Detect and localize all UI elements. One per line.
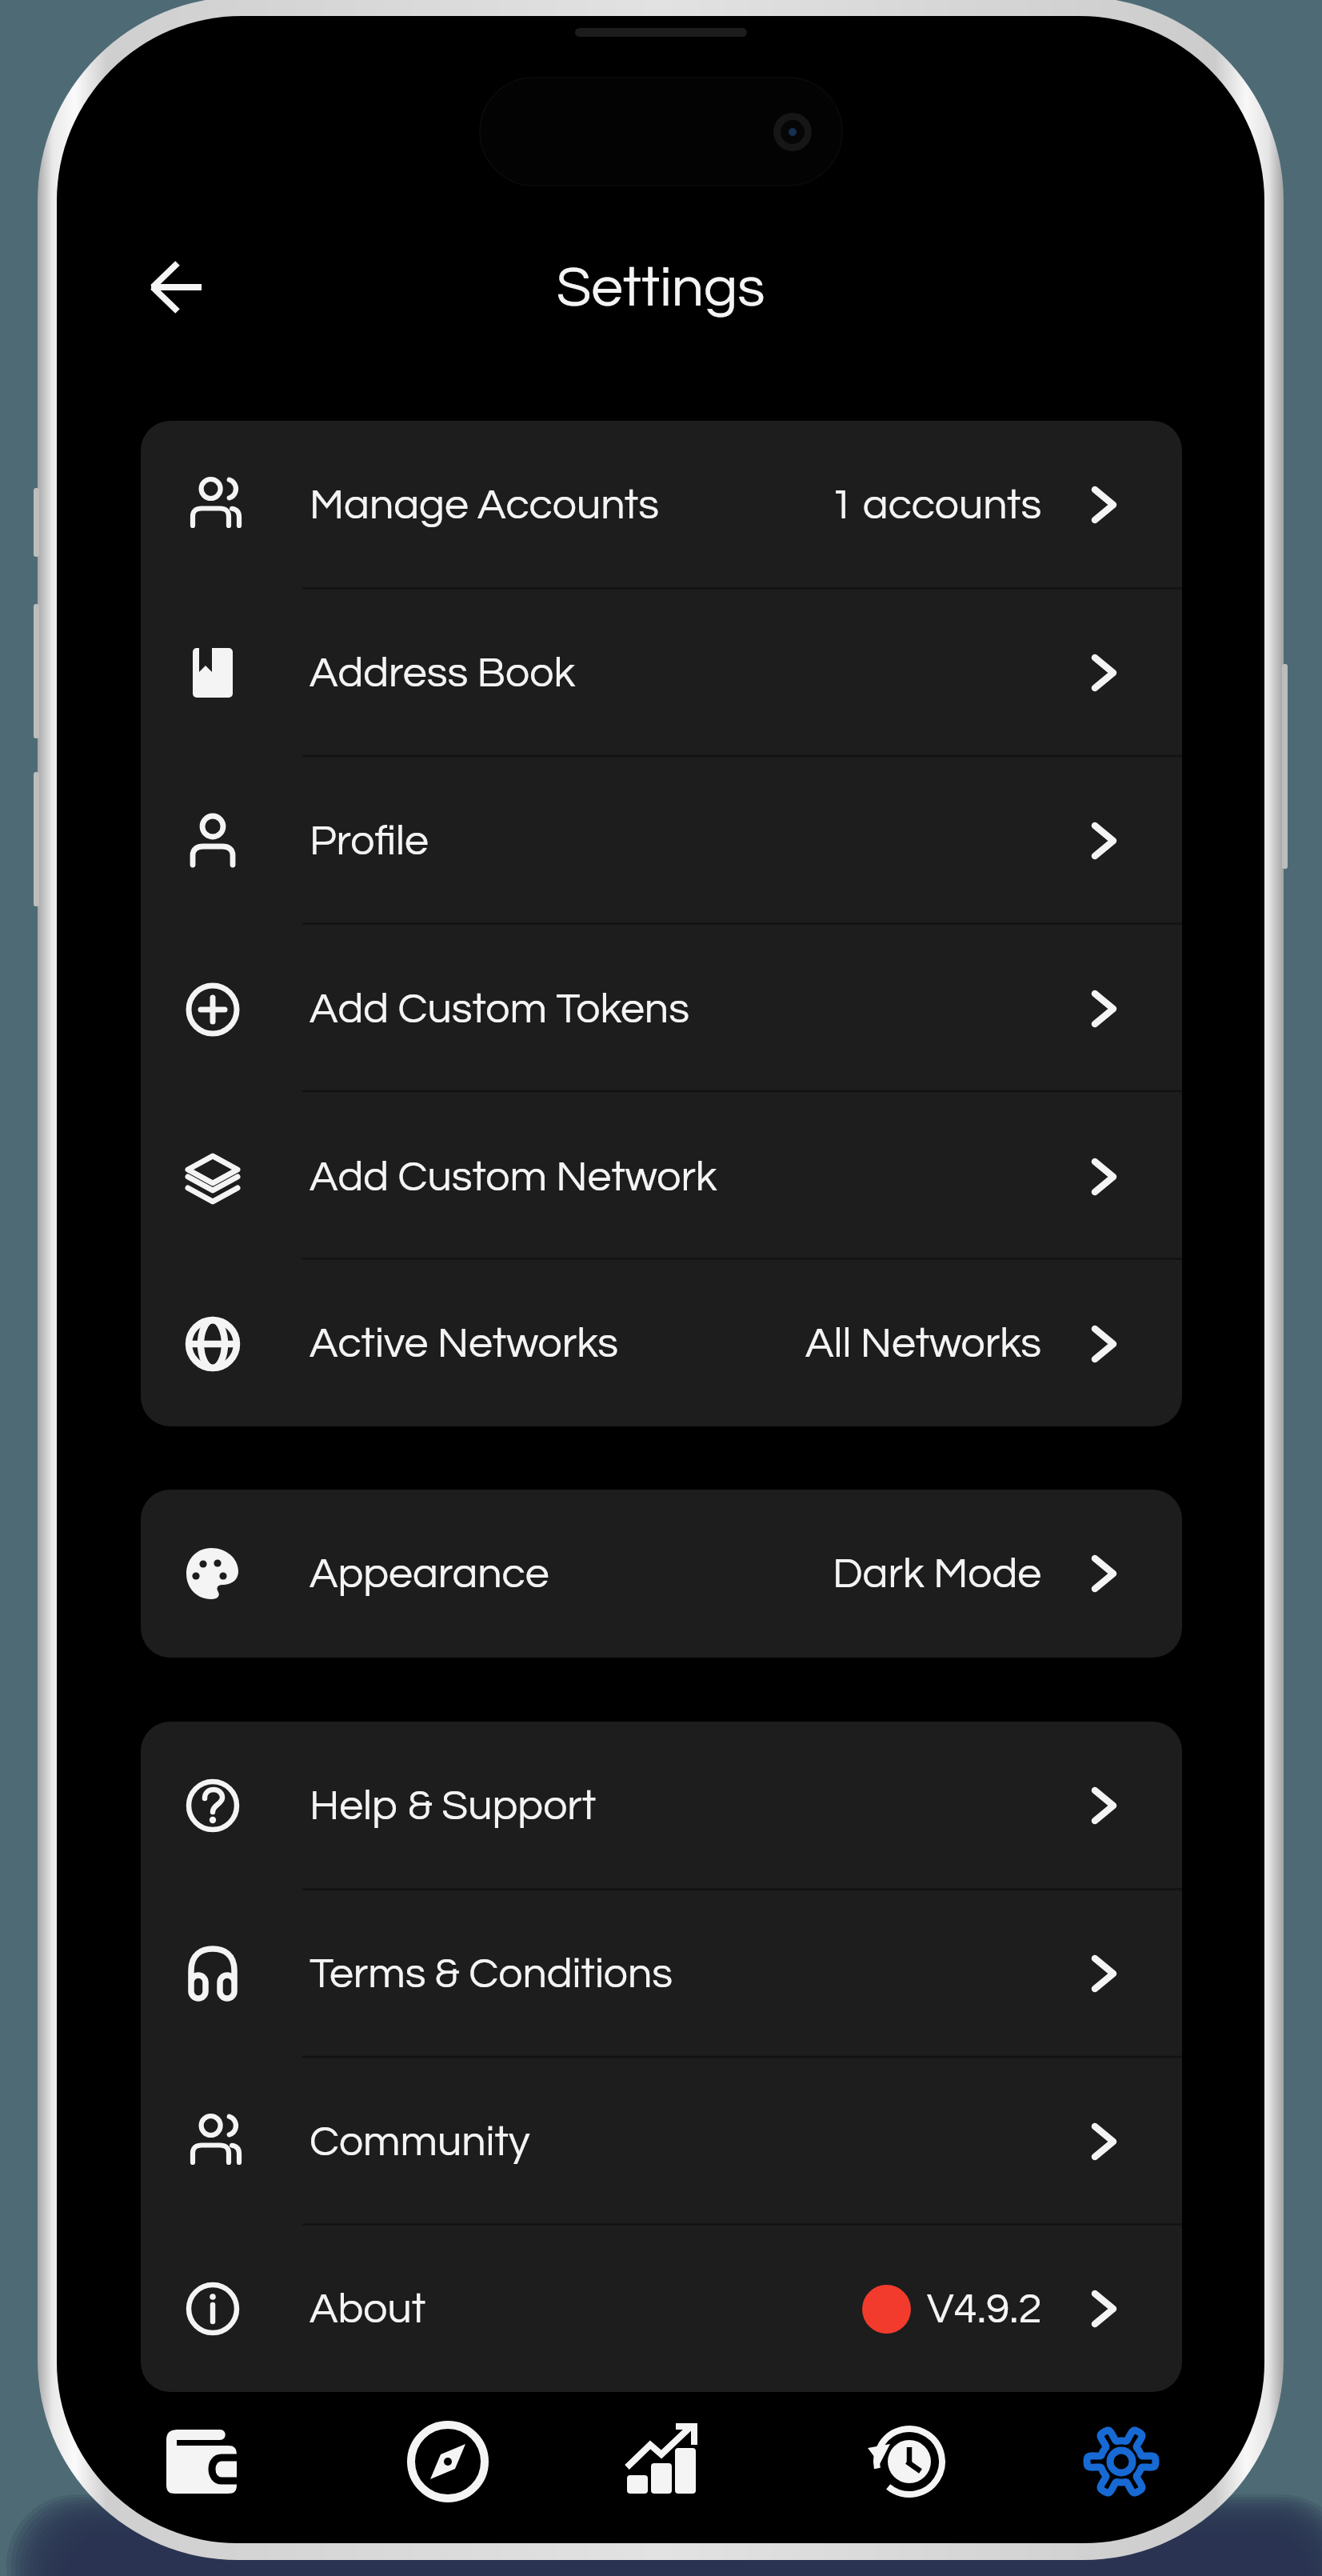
button[interactable]: Terms & Conditions	[141, 1890, 1182, 2058]
button[interactable]: Appearance	[141, 1490, 1182, 1658]
button[interactable]: Active Networks	[141, 1261, 1182, 1426]
staticText: Help & Support	[310, 1784, 597, 1828]
staticText: Add Custom Tokens	[310, 987, 689, 1031]
button[interactable]: Manage Accounts	[141, 421, 1182, 589]
button[interactable]: Help & Support	[141, 1722, 1182, 1890]
button[interactable]: Explore	[388, 2398, 508, 2526]
staticText: All Networks	[805, 1322, 1042, 1366]
button[interactable]: About	[141, 2226, 1182, 2392]
button[interactable]: History	[848, 2398, 968, 2526]
button[interactable]: Community	[141, 2058, 1182, 2226]
staticText: About	[310, 2287, 426, 2331]
button[interactable]: Wallet	[142, 2398, 262, 2526]
staticText: Appearance	[310, 1552, 549, 1596]
staticText: Manage Accounts	[310, 483, 660, 527]
button[interactable]: Markets	[601, 2398, 721, 2526]
staticText: Community	[310, 2120, 530, 2164]
button[interactable]: Profile	[141, 757, 1182, 925]
button[interactable]: Address Book	[141, 589, 1182, 757]
staticText: Terms & Conditions	[310, 1952, 673, 1996]
button[interactable]: Settings	[1061, 2398, 1181, 2526]
button[interactable]: Back	[140, 252, 210, 322]
button[interactable]: Add Custom Tokens	[141, 925, 1182, 1093]
staticText: V4.9.2	[927, 2287, 1042, 2331]
staticText: Active Networks	[310, 1322, 619, 1366]
button[interactable]: Add Custom Network	[141, 1093, 1182, 1261]
staticText: Dark Mode	[833, 1552, 1042, 1596]
staticText: Address Book	[310, 651, 576, 695]
staticText: Settings	[57, 259, 1264, 318]
staticText: Profile	[310, 819, 429, 863]
staticText: Add Custom Network	[310, 1155, 717, 1199]
staticText: 1 accounts	[830, 483, 1042, 527]
